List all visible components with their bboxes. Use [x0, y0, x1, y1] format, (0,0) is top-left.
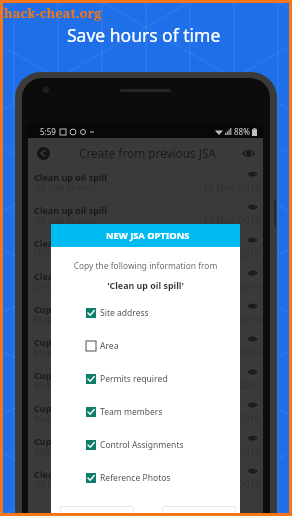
staticText: Save hours of time	[67, 23, 221, 47]
staticText: Oil spill in shop	[34, 182, 97, 194]
button[interactable]: Clean up oil spill	[28, 465, 263, 498]
button[interactable]: CREATE	[162, 506, 236, 516]
staticText: Create from previous JSA	[79, 145, 216, 161]
button[interactable]: Site address	[51, 296, 240, 329]
staticText: Make a cupboard	[34, 413, 106, 425]
button[interactable]: Cupboard install	[28, 432, 263, 465]
staticText: Make a cupboard	[34, 314, 106, 326]
button[interactable]: Control Assignments	[51, 428, 240, 461]
staticText: Site address	[100, 307, 149, 319]
button[interactable]: Clean up oil spill	[28, 201, 263, 234]
staticText: Oil spill in shop	[34, 215, 97, 227]
staticText: Reference Photos	[100, 472, 171, 484]
staticText: Clean up oil spill	[34, 237, 107, 249]
staticText: 88%	[234, 126, 250, 137]
button[interactable]: Cupboard install	[28, 333, 263, 366]
button[interactable]: Clean up oil spill	[28, 234, 263, 267]
staticText: 11 Nov, 2019	[203, 313, 261, 326]
staticText: Cupboard install	[34, 435, 108, 447]
button[interactable]: Clean up oil spill	[28, 267, 263, 300]
staticText: Permits required	[100, 373, 168, 385]
staticText: Control Assignments	[100, 439, 184, 451]
staticText: 11 Nov, 2019	[203, 478, 261, 491]
button[interactable]: Permits required	[51, 362, 240, 395]
staticText: 11 Nov, 2019	[203, 214, 261, 227]
staticText: Clean up oil spill	[34, 270, 107, 282]
staticText: Cupboard install	[34, 369, 108, 381]
button[interactable]: Preview	[239, 144, 257, 162]
staticText: Clean up oil spill	[34, 468, 107, 480]
staticText: 5:59	[40, 126, 56, 137]
button[interactable]: Cupboard install	[28, 300, 263, 333]
staticText: Cupboard install	[34, 402, 108, 414]
button[interactable]: CANCEL	[60, 506, 134, 516]
staticText: Make a cupboard	[34, 380, 106, 392]
staticText: 11 Nov, 2019	[203, 412, 261, 425]
staticText: 11 Nov, 2019	[203, 445, 261, 458]
staticText: 11 Nov, 2019	[203, 280, 261, 293]
staticText: 11 Nov, 2019	[203, 379, 261, 392]
staticText: Cupboard install	[34, 303, 108, 315]
button[interactable]: Team members	[51, 395, 240, 428]
button[interactable]: Area	[51, 329, 240, 362]
button[interactable]: Cupboard install	[28, 399, 263, 432]
staticText: Cupboard install	[34, 336, 108, 348]
staticText: Clean up oil spill	[34, 204, 107, 216]
button[interactable]: Cupboard install	[28, 366, 263, 399]
staticText: Clean up oil spill	[34, 171, 107, 183]
staticText: Team members	[100, 406, 163, 418]
staticText: NEW JSA OPTIONS	[106, 229, 190, 242]
staticText: 11 Nov, 2019	[203, 346, 261, 359]
button[interactable]: Clean up oil spill	[28, 168, 263, 201]
staticText: 'Clean up oil spill'	[51, 279, 240, 291]
button[interactable]: Reference Photos	[51, 461, 240, 494]
staticText: Copy the following information from	[51, 260, 240, 271]
button[interactable]: Back	[32, 142, 54, 164]
staticText: Oil spill in shop	[34, 248, 97, 260]
staticText: Make a cupboard	[34, 446, 106, 458]
staticText: Oil spill in shop	[34, 281, 97, 293]
staticText: hack-cheat.org	[4, 4, 102, 22]
staticText: Oil spill in shop	[34, 479, 97, 491]
staticText: 11 Nov, 2019	[203, 247, 261, 260]
staticText: Area	[100, 340, 119, 352]
staticText: Make a cupboard	[34, 347, 106, 359]
